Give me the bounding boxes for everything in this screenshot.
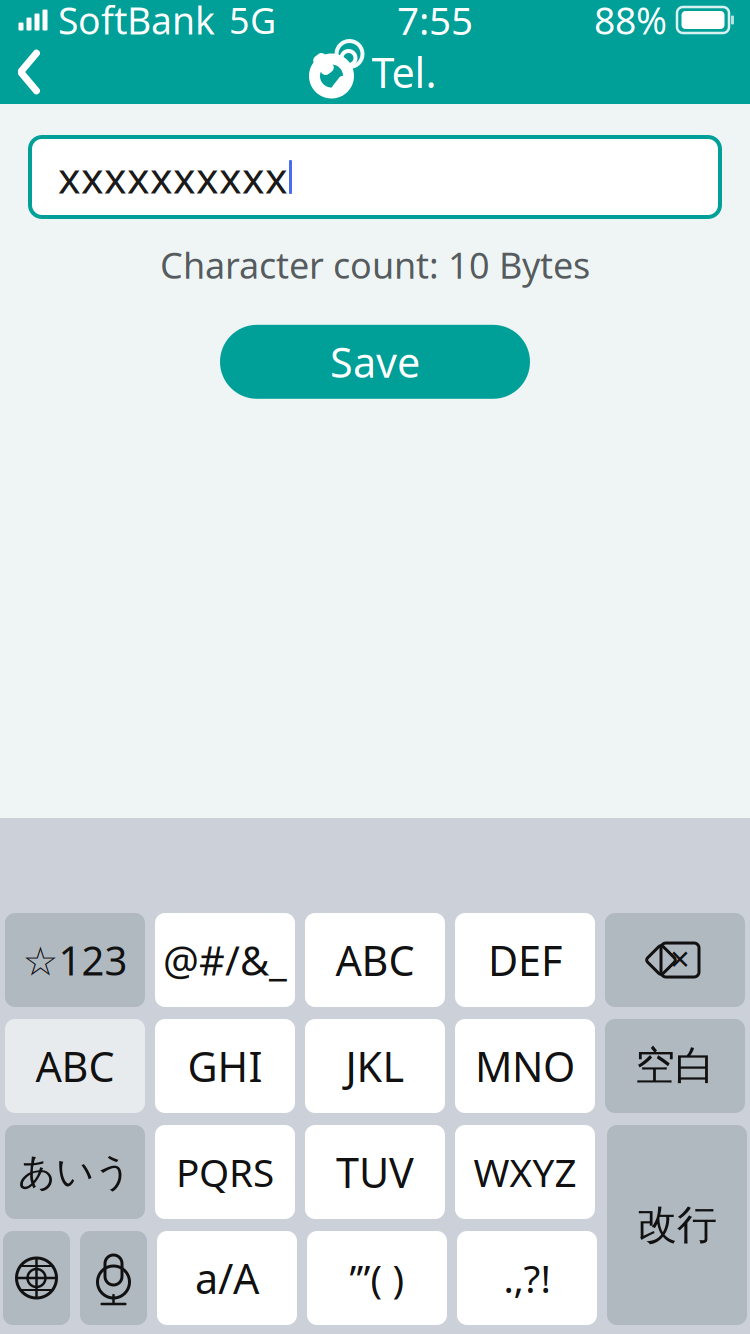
button[interactable]: あいう bbox=[5, 1125, 145, 1219]
button[interactable]: MNO bbox=[455, 1019, 595, 1113]
button[interactable]: ’”( ) bbox=[307, 1231, 447, 1325]
staticText: ABC bbox=[35, 1039, 114, 1093]
staticText: TUV bbox=[336, 1145, 414, 1199]
staticText: Save bbox=[330, 334, 420, 389]
button[interactable]: Back bbox=[0, 42, 46, 102]
staticText: xxxxxxxxxx bbox=[58, 149, 288, 205]
button[interactable]: .,?! bbox=[457, 1231, 597, 1325]
staticText: Character count: 10 Bytes bbox=[160, 241, 590, 289]
button[interactable]: DEF bbox=[455, 913, 595, 1007]
staticText: 改行 bbox=[637, 1200, 717, 1249]
staticText: Tel. bbox=[371, 45, 436, 99]
button[interactable]: 空白 bbox=[605, 1019, 745, 1113]
staticText: × bbox=[670, 935, 690, 981]
staticText: SoftBank bbox=[58, 0, 215, 45]
staticText: @#/&_ bbox=[163, 933, 287, 986]
staticText: ☆123 bbox=[22, 933, 127, 986]
button[interactable]: WXYZ bbox=[455, 1125, 595, 1219]
button[interactable]: JKL bbox=[305, 1019, 445, 1113]
staticText: WXYZ bbox=[473, 1146, 576, 1198]
staticText: a/A bbox=[195, 1251, 259, 1305]
staticText: MNO bbox=[475, 1039, 575, 1093]
staticText: 88% bbox=[594, 0, 667, 45]
staticText: ABC bbox=[335, 933, 414, 987]
button[interactable]: ABC bbox=[5, 1019, 145, 1113]
button[interactable]: 改行 bbox=[607, 1125, 747, 1325]
staticText: 空白 bbox=[635, 1041, 715, 1090]
staticText: あいう bbox=[18, 1149, 132, 1195]
button[interactable]: GHI bbox=[155, 1019, 295, 1113]
staticText: DEF bbox=[488, 933, 562, 987]
button[interactable]: ☆123 bbox=[5, 913, 145, 1007]
staticText: JKL bbox=[345, 1039, 404, 1093]
button[interactable]: a/A bbox=[157, 1231, 297, 1325]
button[interactable]: Next keyboard bbox=[3, 1231, 70, 1325]
staticText: GHI bbox=[187, 1039, 262, 1093]
button[interactable]: TUV bbox=[305, 1125, 445, 1219]
staticText: 7:55 bbox=[397, 0, 473, 46]
staticText: 5G bbox=[229, 0, 276, 44]
staticText: .,?! bbox=[503, 1252, 550, 1304]
staticText: PQRS bbox=[176, 1146, 274, 1198]
button[interactable]: @#/&_ bbox=[155, 913, 295, 1007]
button[interactable]: Delete bbox=[605, 913, 745, 1007]
button[interactable]: Save bbox=[220, 325, 530, 399]
button[interactable]: PQRS bbox=[155, 1125, 295, 1219]
button[interactable]: Dictation bbox=[80, 1231, 147, 1325]
staticText: ’”( ) bbox=[349, 1252, 404, 1304]
button[interactable]: ABC bbox=[305, 913, 445, 1007]
